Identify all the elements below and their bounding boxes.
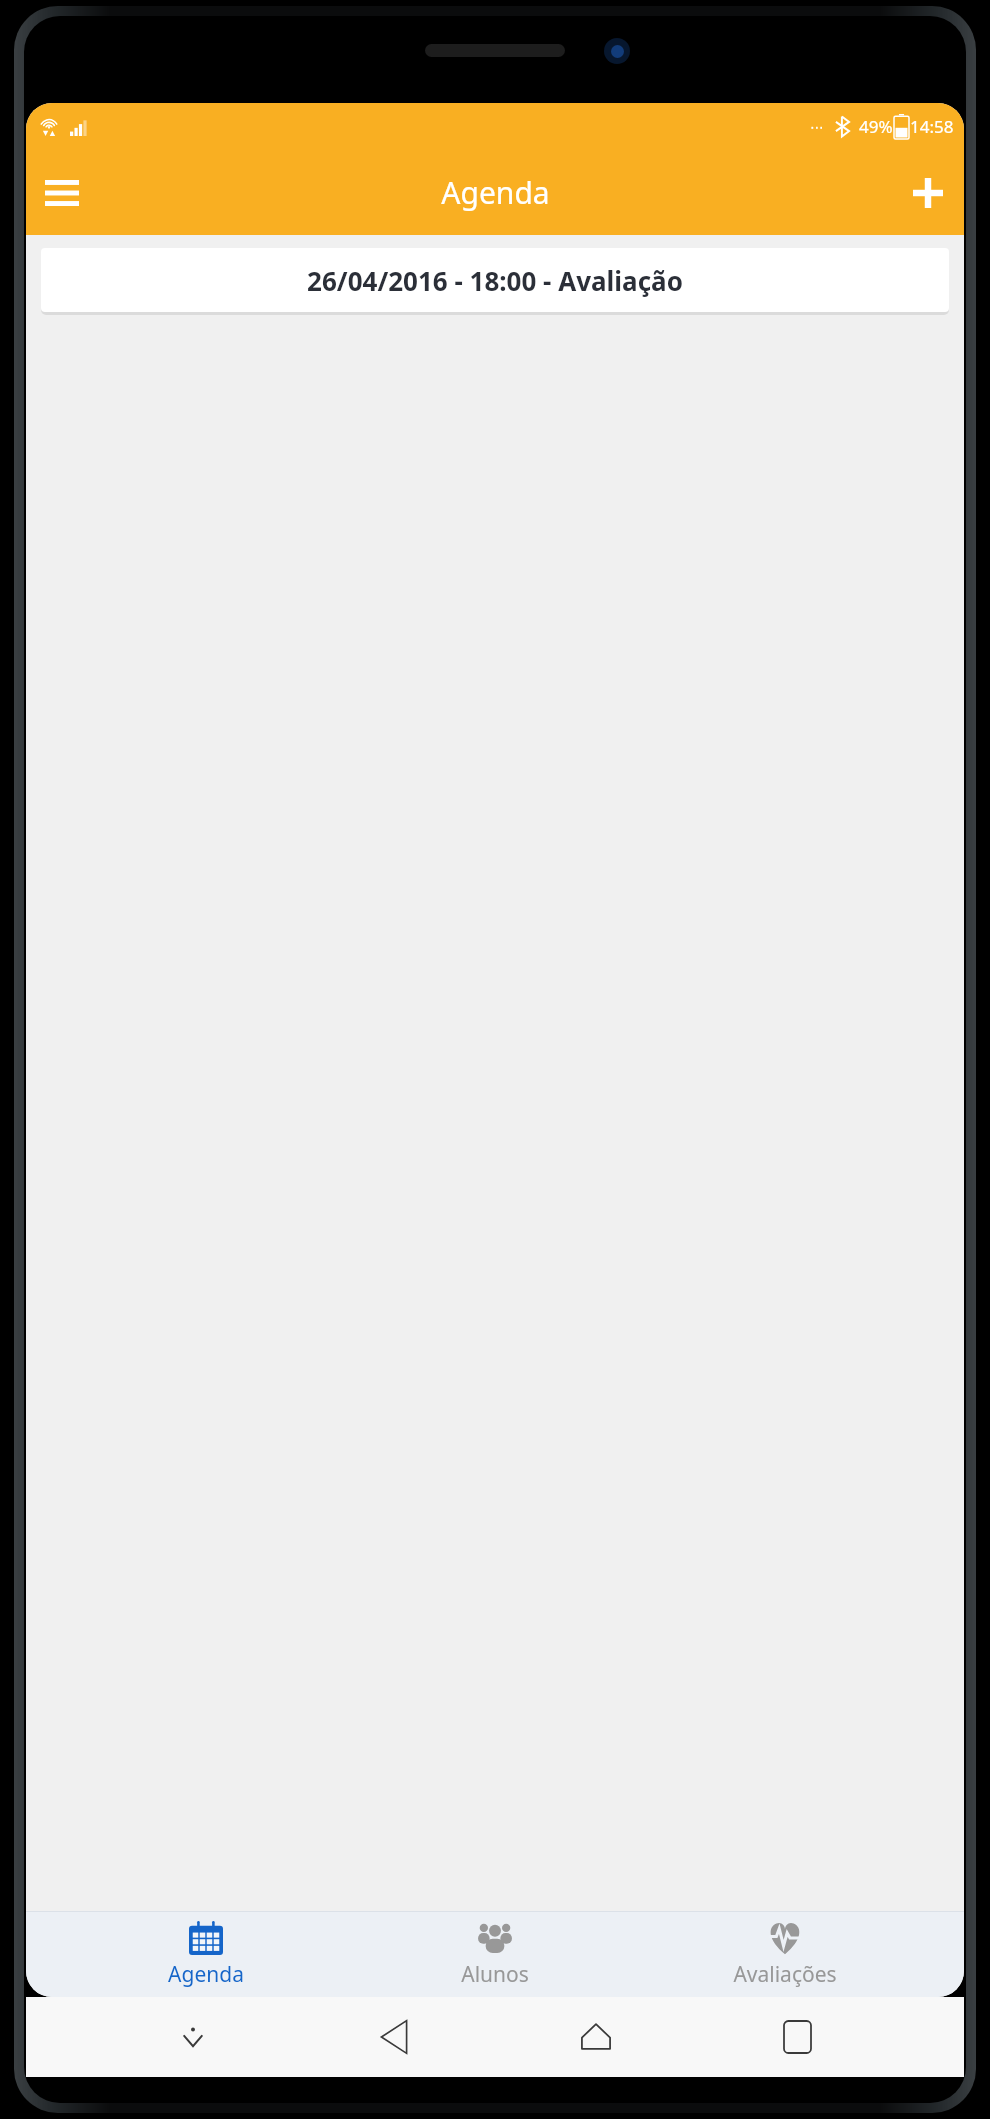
button[interactable]: Open navigation menu [26, 157, 98, 229]
staticText: ⋯ [810, 119, 824, 135]
button[interactable]: Alunos [385, 1911, 605, 1997]
button[interactable]: Hide keyboard [158, 2002, 228, 2072]
button[interactable]: Avaliações [675, 1911, 895, 1997]
button[interactable]: Recent apps [762, 2002, 832, 2072]
button[interactable]: Agenda [96, 1911, 316, 1997]
staticText: 26/04/2016 - 18:00 - Avaliação [307, 263, 683, 298]
button[interactable]: Back [359, 2002, 429, 2072]
staticText: 49% [859, 115, 893, 138]
staticText: Alunos [461, 1960, 529, 1989]
button[interactable]: Add appointment [892, 157, 964, 229]
staticText: Agenda [441, 172, 550, 213]
button[interactable]: 26/04/2016 - 18:00 - Avaliação [41, 248, 949, 312]
staticText: 14:58 [910, 115, 954, 138]
staticText: Agenda [168, 1960, 244, 1989]
button[interactable]: Home [561, 2002, 631, 2072]
staticText: Avaliações [733, 1960, 837, 1989]
